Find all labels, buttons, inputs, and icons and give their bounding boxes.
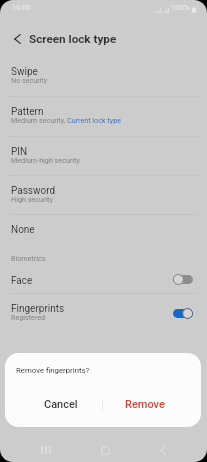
- staticText: Fingerprints: [11, 303, 65, 315]
- staticText: Medium security,: [11, 116, 67, 124]
- button[interactable]: Face: [0, 269, 207, 294]
- button[interactable]: Navigate up: [7, 29, 27, 49]
- button[interactable]: Face off: [173, 273, 193, 286]
- staticText: Current lock type: [67, 116, 121, 124]
- button[interactable]: Cancel: [19, 390, 102, 418]
- button[interactable]: Fingerprints on: [173, 307, 193, 320]
- button[interactable]: Home: [95, 440, 115, 460]
- staticText: Swipe: [11, 66, 38, 78]
- staticText: Medium-high security: [11, 156, 80, 164]
- staticText: Screen lock type: [29, 32, 117, 46]
- button[interactable]: PIN: [0, 137, 207, 176]
- button[interactable]: Recent apps: [36, 440, 56, 460]
- staticText: 100%: [171, 3, 190, 12]
- staticText: PIN: [11, 146, 28, 158]
- staticText: None: [11, 224, 35, 236]
- staticText: Password: [11, 185, 56, 197]
- staticText: Remove: [125, 398, 165, 411]
- staticText: Remove fingerprints?: [16, 366, 90, 375]
- staticText: Cancel: [44, 398, 78, 411]
- button[interactable]: Password: [0, 176, 207, 215]
- staticText: 10:00: [12, 3, 31, 12]
- button[interactable]: Fingerprints: [0, 294, 207, 330]
- staticText: Pattern: [11, 106, 44, 118]
- staticText: Biometrics: [11, 254, 46, 262]
- button[interactable]: Pattern: [0, 97, 207, 137]
- staticText: Registered: [11, 313, 46, 321]
- button[interactable]: None: [0, 215, 207, 246]
- staticText: High security: [11, 195, 53, 203]
- button[interactable]: Remove: [103, 390, 187, 418]
- button[interactable]: Swipe: [0, 56, 207, 97]
- staticText: Face: [11, 275, 33, 287]
- staticText: No security: [11, 76, 48, 84]
